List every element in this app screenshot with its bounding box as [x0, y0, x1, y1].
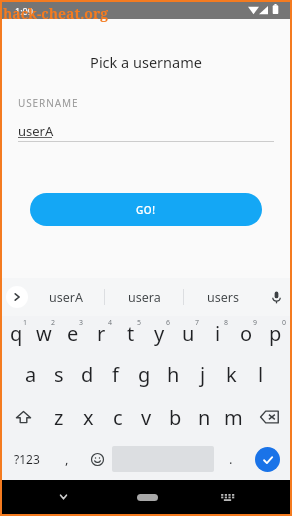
- button[interactable]: ?123: [2, 438, 52, 480]
- button[interactable]: Backspace: [248, 396, 290, 438]
- button[interactable]: m: [219, 396, 248, 438]
- button[interactable]: a: [17, 353, 45, 396]
- staticText: k: [226, 361, 237, 388]
- button[interactable]: s: [45, 353, 73, 396]
- button[interactable]: t: [116, 316, 145, 353]
- staticText: w: [36, 320, 52, 347]
- staticText: f: [112, 361, 119, 388]
- button[interactable]: z: [44, 396, 74, 438]
- button[interactable]: Emoji: [82, 438, 112, 480]
- button[interactable]: userA: [27, 278, 104, 316]
- staticText: 9: [253, 318, 258, 328]
- button[interactable]: Home: [137, 494, 158, 501]
- staticText: r: [97, 320, 106, 347]
- button[interactable]: Switch keyboard: [215, 485, 239, 509]
- staticText: 7: [195, 318, 200, 328]
- button[interactable]: r: [87, 316, 116, 353]
- button[interactable]: d: [73, 353, 101, 396]
- button[interactable]: w: [30, 316, 58, 353]
- staticText: 4: [108, 318, 113, 328]
- staticText: j: [200, 361, 206, 388]
- button[interactable]: GO!: [30, 193, 262, 226]
- staticText: usera: [128, 289, 161, 306]
- staticText: c: [113, 404, 123, 431]
- staticText: t: [127, 320, 135, 347]
- button[interactable]: .: [218, 438, 244, 480]
- button[interactable]: e: [58, 316, 87, 353]
- staticText: 1: [23, 318, 28, 328]
- staticText: 6: [166, 318, 171, 328]
- button[interactable]: b: [161, 396, 190, 438]
- button[interactable]: h: [159, 353, 188, 396]
- button[interactable]: q: [2, 316, 30, 353]
- staticText: USERNAME: [18, 96, 79, 110]
- button[interactable]: o: [232, 316, 261, 353]
- staticText: l: [258, 361, 264, 388]
- button[interactable]: k: [217, 353, 246, 396]
- staticText: x: [83, 404, 94, 431]
- staticText: userA: [18, 122, 54, 140]
- staticText: 8: [224, 318, 229, 328]
- staticText: Pick a username: [2, 52, 290, 72]
- button[interactable]: y: [145, 316, 174, 353]
- staticText: ,: [65, 450, 69, 468]
- staticText: p: [269, 320, 282, 347]
- button[interactable]: More suggestions: [6, 286, 28, 308]
- staticText: userA: [49, 289, 83, 306]
- staticText: z: [54, 404, 64, 431]
- staticText: s: [54, 361, 64, 388]
- staticText: ?123: [14, 451, 40, 467]
- staticText: i: [215, 320, 221, 347]
- staticText: h: [167, 361, 180, 388]
- staticText: b: [169, 404, 182, 431]
- staticText: 3: [79, 318, 84, 328]
- staticText: m: [224, 404, 243, 431]
- staticText: u: [182, 320, 195, 347]
- button[interactable]: l: [246, 353, 275, 396]
- staticText: .: [229, 450, 233, 468]
- staticText: v: [141, 404, 152, 431]
- button[interactable]: Hide keyboard: [50, 484, 76, 510]
- button[interactable]: u: [174, 316, 203, 353]
- staticText: q: [10, 320, 23, 347]
- staticText: y: [154, 320, 165, 347]
- staticText: 2: [51, 318, 56, 328]
- button[interactable]: Done: [244, 438, 290, 480]
- staticText: 0: [282, 318, 287, 328]
- staticText: o: [240, 320, 253, 347]
- button[interactable]: c: [103, 396, 132, 438]
- button[interactable]: ,: [52, 438, 82, 480]
- button[interactable]: usera: [105, 278, 183, 316]
- staticText: users: [207, 289, 239, 306]
- button[interactable]: j: [188, 353, 217, 396]
- button[interactable]: x: [74, 396, 103, 438]
- button[interactable]: Voice input: [266, 287, 286, 307]
- button[interactable]: n: [190, 396, 219, 438]
- staticText: e: [67, 320, 79, 347]
- button[interactable]: p: [261, 316, 290, 353]
- staticText: GO!: [136, 203, 156, 217]
- staticText: n: [198, 404, 211, 431]
- button[interactable]: v: [132, 396, 161, 438]
- button[interactable]: i: [203, 316, 232, 353]
- staticText: hack-cheat.org: [3, 4, 109, 23]
- staticText: 5: [137, 318, 142, 328]
- button[interactable]: users: [184, 278, 262, 316]
- staticText: g: [138, 361, 151, 388]
- button[interactable]: g: [130, 353, 159, 396]
- staticText: 1:09: [15, 5, 33, 17]
- staticText: a: [25, 361, 37, 388]
- button[interactable]: f: [101, 353, 130, 396]
- staticText: d: [81, 361, 94, 388]
- button[interactable]: Shift: [2, 396, 44, 438]
